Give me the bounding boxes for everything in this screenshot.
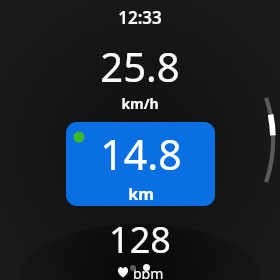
staticText: 25.8	[100, 39, 180, 93]
button[interactable]: 25.8	[86, 38, 194, 114]
staticText: km	[128, 183, 154, 205]
staticText: bpm	[133, 264, 164, 279]
button[interactable]: 128	[95, 214, 185, 280]
other: Recording active	[70, 128, 88, 146]
staticText: 14.8	[100, 126, 182, 182]
staticText: 128	[109, 215, 171, 264]
staticText: km/h	[121, 94, 159, 113]
other: Heart rate	[117, 266, 129, 278]
staticText: 12:33	[118, 6, 162, 29]
button[interactable]: Recording active	[66, 122, 215, 206]
